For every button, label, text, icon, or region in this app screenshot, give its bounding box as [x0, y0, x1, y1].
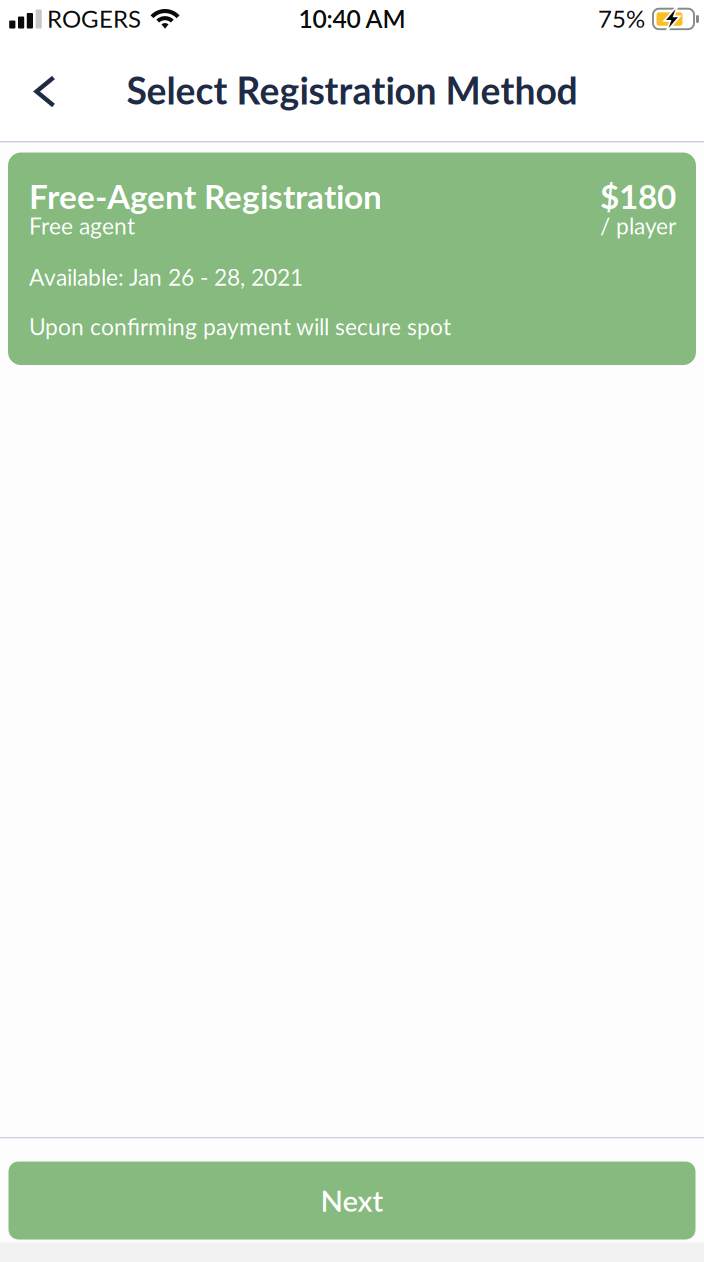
staticText: Upon confirming payment will secure spot — [29, 313, 451, 340]
staticText: Free agent — [29, 212, 135, 239]
staticText: Available: Jan 26 - 28, 2021 — [29, 263, 303, 291]
staticText: Next — [320, 1183, 383, 1218]
button[interactable]: Back — [0, 58, 80, 124]
staticText: 75% — [598, 4, 645, 33]
staticText: Select Registration Method — [126, 68, 577, 112]
button[interactable]: Free-Agent Registration — [8, 152, 696, 365]
staticText: Free-Agent Registration — [29, 176, 382, 216]
staticText: $180 — [600, 176, 676, 216]
staticText: ROGERS — [47, 4, 141, 33]
staticText: / player — [600, 212, 676, 239]
button[interactable]: Next — [8, 1161, 695, 1239]
staticText: 10:40 AM — [298, 4, 405, 33]
